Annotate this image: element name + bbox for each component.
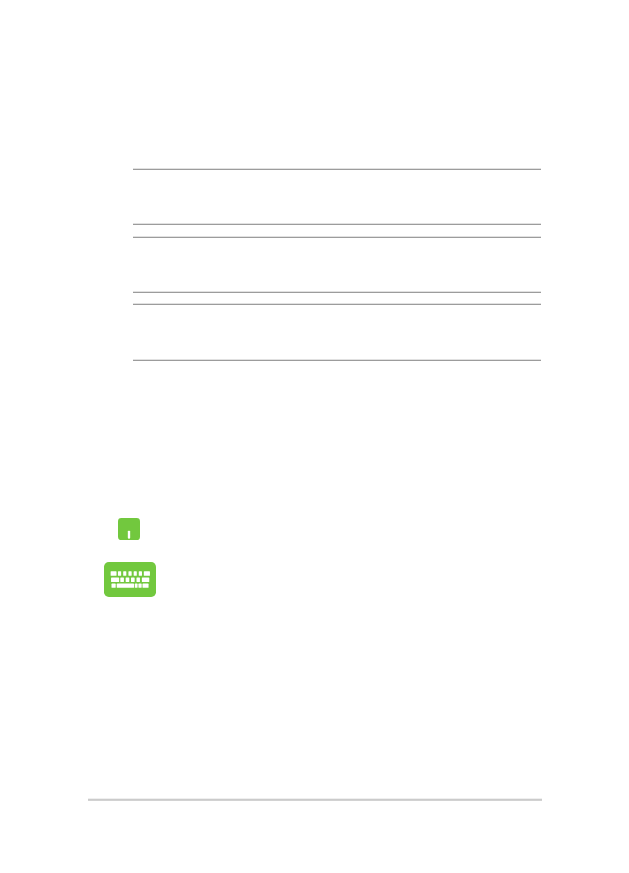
button[interactable]: Keyboard	[104, 562, 156, 597]
button[interactable]: Touchpad	[118, 518, 140, 540]
